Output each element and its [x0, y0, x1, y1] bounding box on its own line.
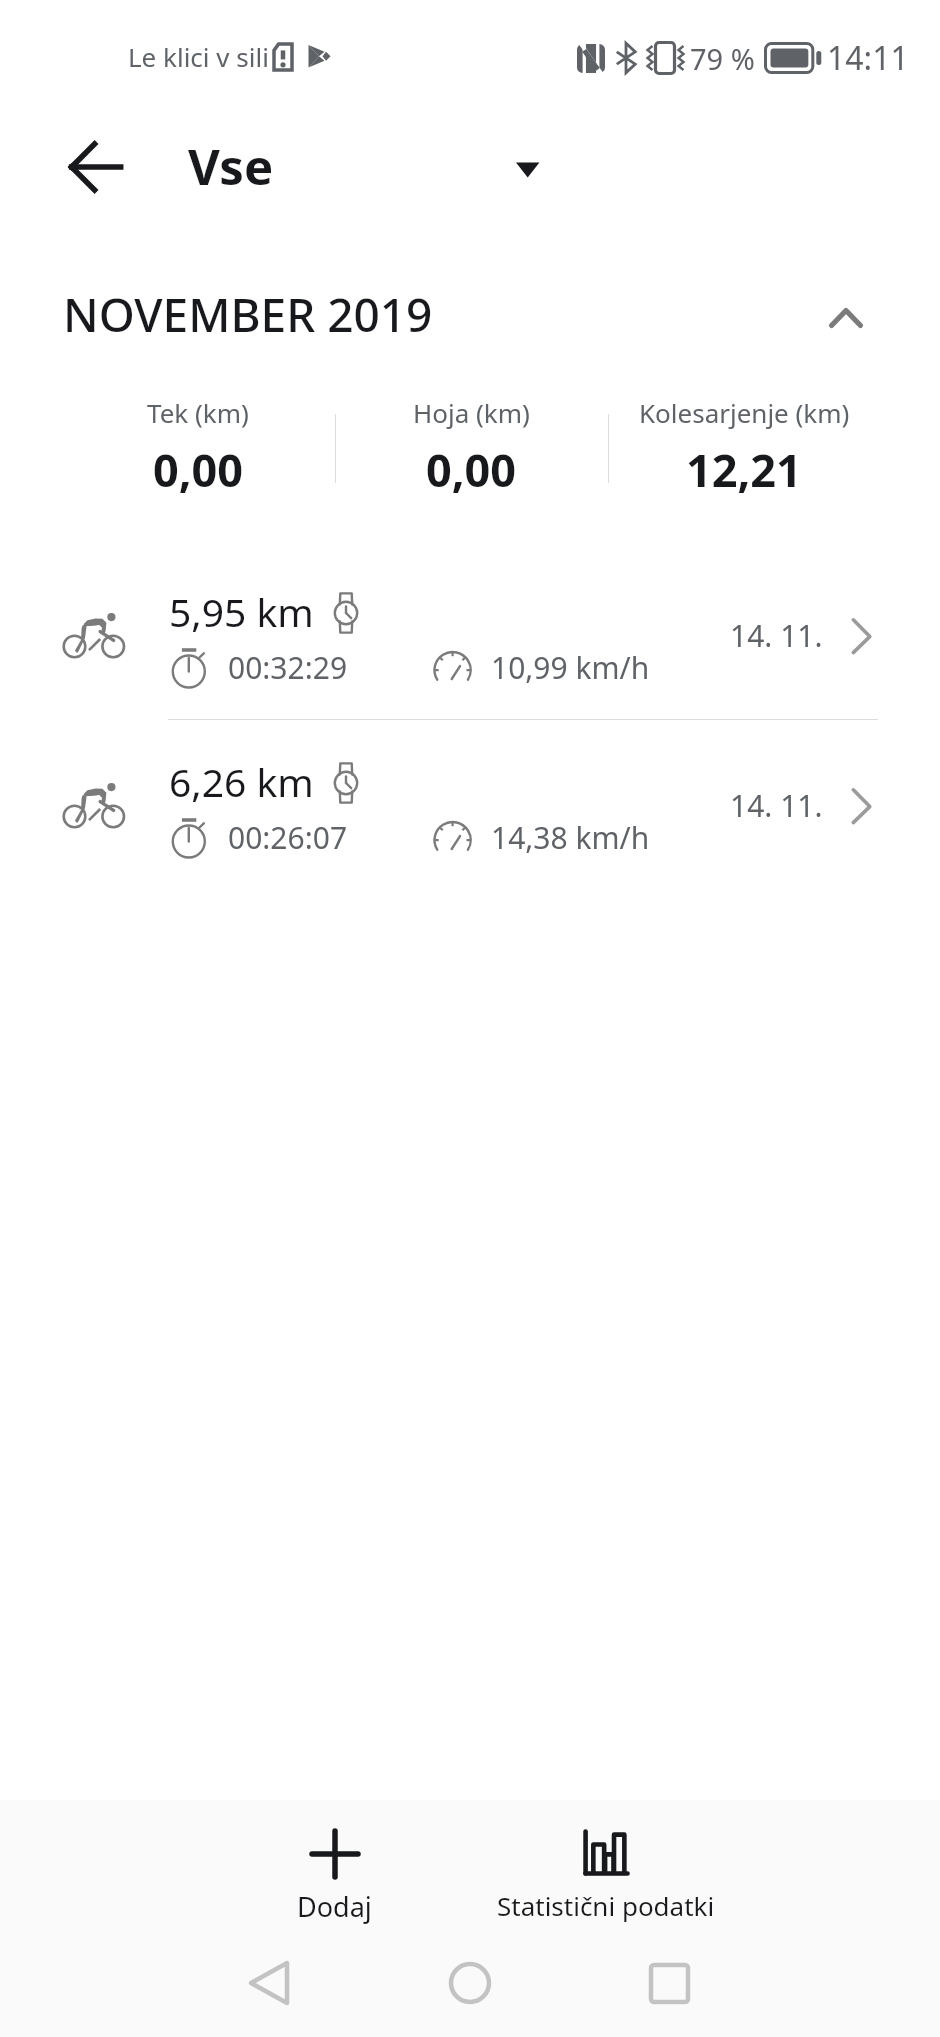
- button[interactable]: Back: [209, 1943, 329, 2023]
- staticText: Dodaj: [297, 1888, 372, 1925]
- staticText: 10,99 km/h: [491, 647, 650, 688]
- button[interactable]: Back: [44, 131, 144, 203]
- button[interactable]: Recent apps: [610, 1943, 730, 2023]
- staticText: Tek (km): [147, 395, 249, 430]
- button[interactable]: 5,95 km: [0, 565, 940, 719]
- staticText: 00:26:07: [228, 817, 348, 858]
- button[interactable]: 6,26 km: [0, 735, 940, 889]
- button[interactable]: Dodaj: [234, 1814, 434, 1937]
- staticText: 0,00: [426, 439, 517, 500]
- staticText: Statistični podatki: [497, 1888, 715, 1923]
- staticText: 79 %: [690, 39, 755, 78]
- staticText: Kolesarjenje (km): [639, 395, 850, 430]
- staticText: NOVEMBER 2019: [63, 283, 433, 346]
- staticText: 14:11: [827, 36, 909, 80]
- staticText: Hoja (km): [413, 395, 530, 430]
- staticText: 00:32:29: [228, 647, 348, 688]
- staticText: 5,95 km: [169, 585, 314, 638]
- button[interactable]: NOVEMBER 2019: [0, 273, 940, 349]
- staticText: Vse: [188, 133, 274, 200]
- staticText: 14. 11.: [730, 785, 823, 826]
- staticText: 0,00: [153, 439, 244, 500]
- staticText: Le klici v sili: [128, 39, 269, 74]
- staticText: 6,26 km: [169, 755, 314, 808]
- button[interactable]: Filter: [494, 140, 562, 200]
- button[interactable]: Home: [410, 1943, 530, 2023]
- staticText: 12,21: [686, 439, 802, 500]
- staticText: 14. 11.: [730, 615, 823, 656]
- staticText: 14,38 km/h: [491, 817, 650, 858]
- button[interactable]: Statistični podatki: [456, 1814, 756, 1937]
